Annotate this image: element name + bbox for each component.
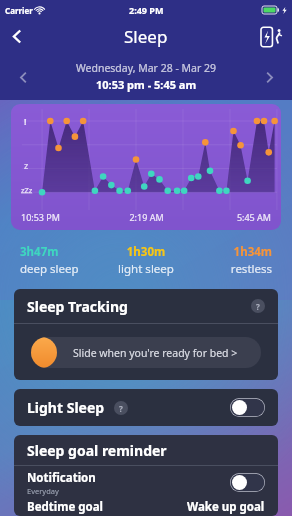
staticText: deep sleep xyxy=(20,261,100,277)
button[interactable]: Sleep Tracking xyxy=(14,289,278,323)
staticText: ? xyxy=(256,301,260,312)
button[interactable]: Light Sleep xyxy=(14,389,278,426)
staticText: Bedtime goal xyxy=(27,499,187,515)
staticText: Everyday xyxy=(27,486,59,496)
button[interactable]: Toggle xyxy=(230,473,265,492)
staticText: Sleep goal reminder xyxy=(27,441,167,460)
button[interactable]: Next day xyxy=(256,64,282,90)
staticText: 3h47m xyxy=(20,244,100,260)
staticText: Notification xyxy=(27,470,96,486)
button[interactable]: Previous day xyxy=(10,64,36,90)
staticText: ! xyxy=(24,115,27,127)
button[interactable]: Device activity xyxy=(259,24,285,50)
button[interactable]: Toggle xyxy=(230,398,265,417)
staticText: zZz xyxy=(21,185,33,195)
button[interactable]: Help xyxy=(114,401,128,415)
button[interactable]: Bedtime goal xyxy=(14,499,278,516)
staticText: Slide when you're ready for bed > xyxy=(73,346,238,360)
staticText: Wake up goal xyxy=(187,499,265,515)
staticText: 10:53 PM xyxy=(21,211,105,223)
staticText: 10:53 pm - 5:45 am xyxy=(96,77,197,92)
button[interactable]: Notification xyxy=(14,466,278,499)
staticText: 5:45 AM xyxy=(188,211,271,223)
staticText: restless xyxy=(192,261,272,277)
button[interactable]: Help xyxy=(251,299,265,313)
staticText: 1h30m xyxy=(100,244,192,260)
button[interactable]: Slide when you're ready for bed > xyxy=(31,337,261,368)
button[interactable]: ! xyxy=(11,104,281,230)
staticText: Sleep xyxy=(124,25,168,48)
staticText: 1h34m xyxy=(192,244,272,260)
staticText: z xyxy=(24,159,29,171)
staticText: 2:49 PM xyxy=(129,4,164,16)
button[interactable]: Sleep goal reminder xyxy=(14,435,278,465)
staticText: Carrier xyxy=(5,5,33,16)
staticText: Wednesday, Mar 28 - Mar 29 xyxy=(76,61,217,75)
staticText: 2:19 AM xyxy=(105,211,188,223)
button[interactable]: Back xyxy=(0,20,34,53)
staticText: light sleep xyxy=(100,261,192,277)
staticText: ? xyxy=(119,403,123,414)
staticText: Sleep Tracking xyxy=(27,297,251,316)
staticText: Light Sleep xyxy=(27,398,105,417)
